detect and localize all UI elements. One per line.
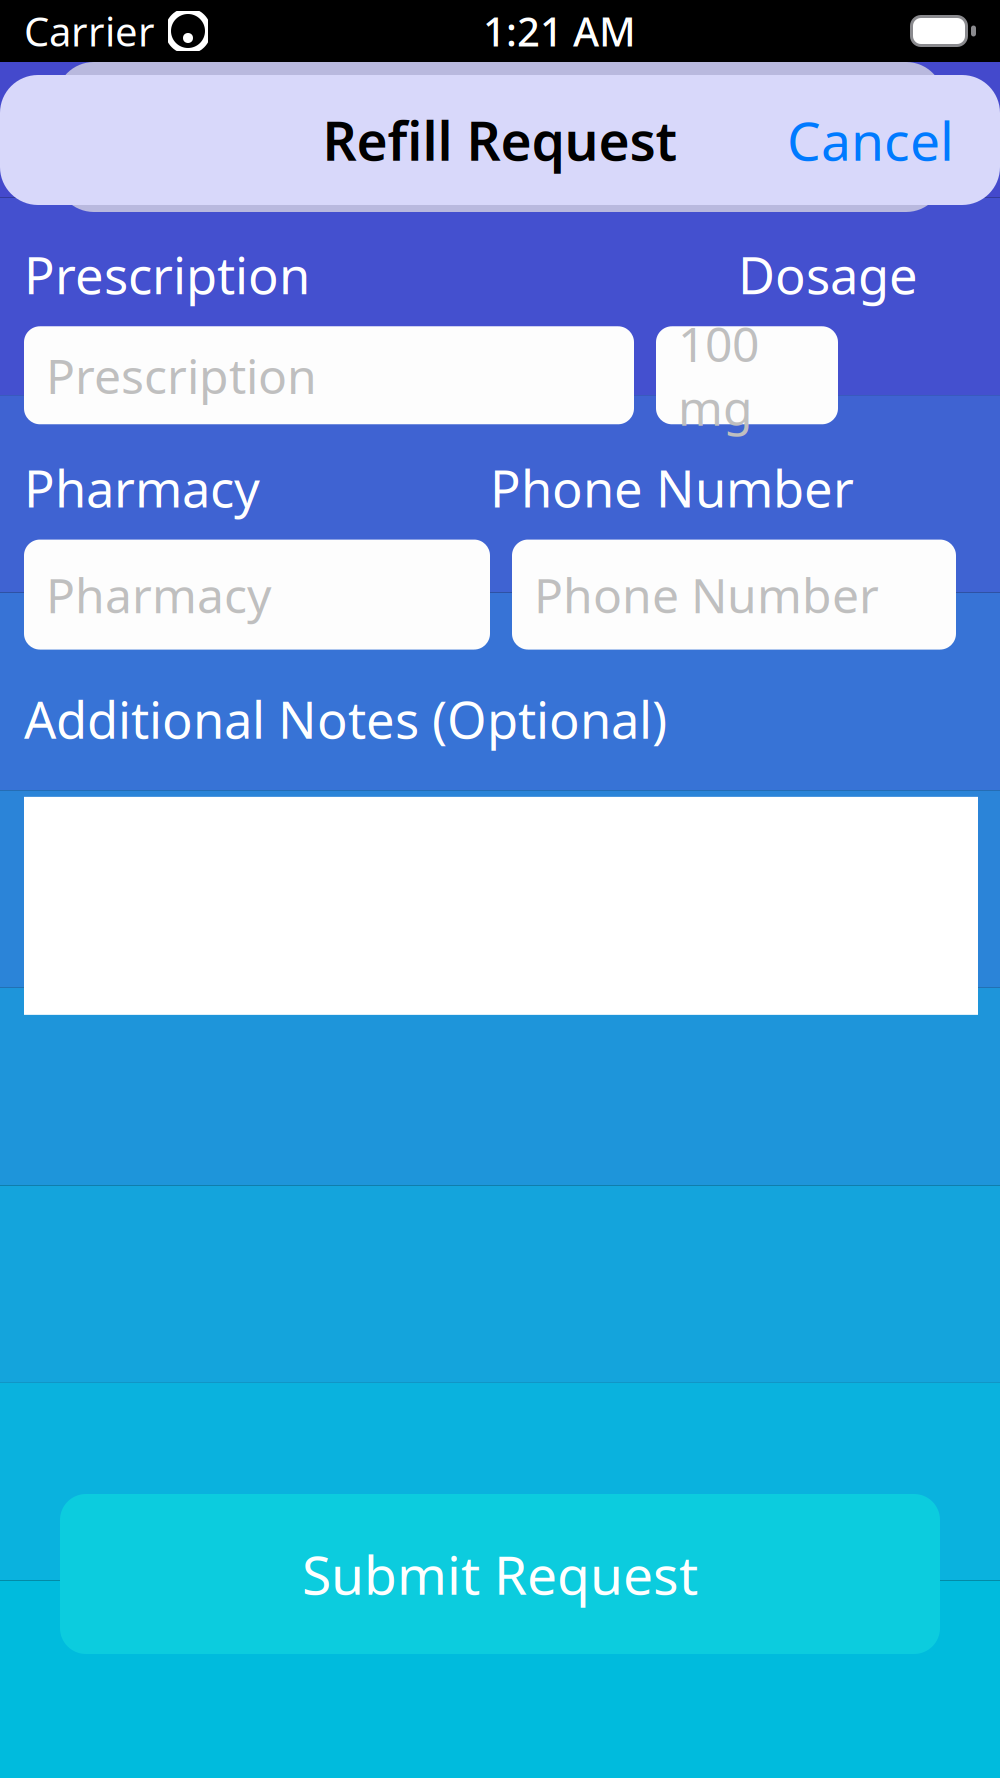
staticText: Cancel [787,105,954,175]
button[interactable]: Prescription [24,326,634,424]
button[interactable]: Pharmacy [24,540,490,650]
staticText: Additional Notes (Optional) [24,686,667,753]
button[interactable]: Cancel [773,95,968,185]
staticText: Phone Number [490,454,854,522]
staticText: Prescription [46,343,317,407]
staticText: 1:21 AM [483,4,636,57]
staticText: Phone Number [534,563,879,626]
button[interactable]: Submit Request [60,1494,940,1654]
staticText: Prescription [24,241,310,308]
staticText: Pharmacy [46,563,271,626]
staticText: Submit Request [302,1539,698,1609]
staticText: 100 mg [678,311,759,439]
staticText: Carrier [24,4,155,57]
staticText: Dosage [738,241,918,308]
button[interactable]: 100 mg [656,326,838,424]
staticText: Refill Request [322,105,677,175]
button[interactable]: Phone Number [512,540,956,650]
staticText: Pharmacy [24,454,260,522]
